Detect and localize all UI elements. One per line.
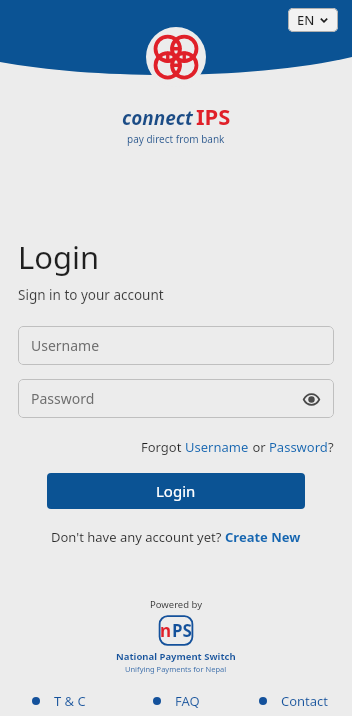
- staticText: Username: [185, 438, 249, 456]
- staticText: Login: [18, 236, 100, 278]
- button[interactable]: Contact: [235, 692, 352, 710]
- staticText: National Payment Switch: [116, 650, 236, 663]
- button[interactable]: T & C: [0, 692, 118, 710]
- staticText: Username: [31, 336, 100, 355]
- button[interactable]: Create New: [225, 528, 301, 546]
- staticText: ?: [328, 438, 334, 456]
- staticText: Login: [156, 481, 196, 501]
- button[interactable]: FAQ: [118, 692, 235, 710]
- staticText: T & C: [54, 692, 86, 710]
- staticText: or: [249, 438, 269, 456]
- staticText: Password: [269, 438, 328, 456]
- staticText: Password: [31, 389, 95, 408]
- staticText: Don't have any account yet?: [51, 528, 222, 546]
- staticText: Forgot: [141, 438, 185, 456]
- button[interactable]: Show password: [296, 384, 326, 414]
- staticText: Create New: [225, 528, 301, 546]
- staticText: Unifying Payments for Nepal: [125, 664, 227, 674]
- staticText: Powered by: [150, 598, 203, 611]
- staticText: EN: [297, 11, 315, 29]
- staticText: IPS: [196, 101, 231, 131]
- staticText: n: [160, 619, 172, 642]
- staticText: Contact: [281, 692, 329, 710]
- staticText: connect: [122, 105, 193, 131]
- staticText: Sign in to your account: [18, 286, 164, 304]
- staticText: pay direct from bank: [127, 132, 225, 146]
- button[interactable]: Username: [18, 326, 334, 365]
- button[interactable]: Username: [185, 438, 249, 456]
- staticText: FAQ: [175, 692, 200, 710]
- button[interactable]: Login: [47, 473, 305, 509]
- button[interactable]: Password: [269, 438, 328, 456]
- staticText: PS: [172, 619, 192, 642]
- button[interactable]: EN: [288, 8, 338, 32]
- button[interactable]: Password: [18, 379, 334, 418]
